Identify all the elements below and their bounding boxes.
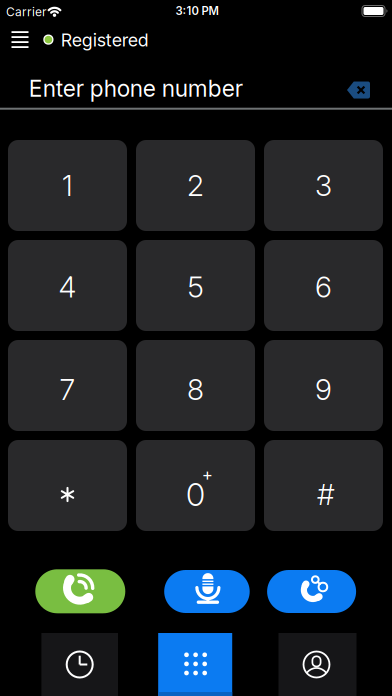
staticText: 7 [59,372,75,407]
button[interactable]: Call [35,569,125,613]
staticText: 1 [62,168,73,203]
button[interactable]: 2 [136,140,255,231]
button[interactable]: 3 [264,140,383,231]
button[interactable]: # [264,440,383,531]
staticText: 3 [315,168,332,203]
button[interactable]: Voicemail [267,570,356,613]
button[interactable]: 4 [8,240,127,331]
staticText: 5 [187,270,203,304]
staticText: + [202,464,213,484]
staticText: 8 [187,372,204,407]
button[interactable]: Menu [5,25,34,54]
staticText: Carrier [6,5,47,19]
staticText: # [317,477,335,512]
button[interactable]: Keypad [158,633,232,696]
button[interactable]: 6 [264,240,383,331]
button[interactable]: Voice input [164,570,250,613]
staticText: 3:10 PM [175,4,218,18]
staticText: Registered [61,29,149,51]
staticText: 2 [187,168,204,203]
staticText: 6 [315,270,332,304]
button[interactable]: 0 [136,440,255,531]
button[interactable]: 1 [8,140,127,231]
button[interactable]: Contacts [278,633,356,696]
staticText: 4 [58,270,76,304]
button[interactable]: 5 [136,240,255,331]
button[interactable]: 9 [264,340,383,431]
button[interactable]: Delete [341,75,376,104]
button[interactable]: History [41,633,118,696]
staticText: 0 [186,475,205,513]
button[interactable]: 8 [136,340,255,431]
button[interactable]: Star [8,440,127,531]
staticText: Enter phone number [29,75,243,102]
button[interactable]: 7 [8,340,127,431]
staticText: 9 [315,372,332,407]
